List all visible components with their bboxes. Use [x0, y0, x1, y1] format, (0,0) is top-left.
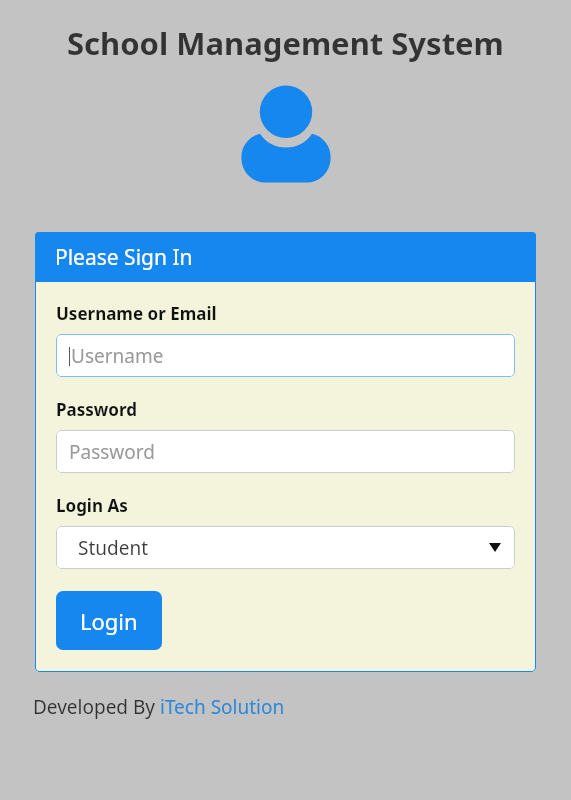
- staticText: Developed By iTech Solution: [33, 694, 285, 720]
- staticText: Password: [56, 398, 137, 421]
- other: User account: [238, 82, 334, 184]
- staticText: Login As: [56, 494, 128, 517]
- staticText: Student: [78, 535, 149, 561]
- other: Open role selector: [489, 543, 501, 552]
- staticText: Username: [71, 343, 164, 369]
- staticText: Username or Email: [56, 302, 217, 325]
- staticText: Password: [69, 439, 155, 465]
- staticText: School Management System: [67, 22, 504, 64]
- button[interactable]: Password: [56, 430, 515, 473]
- button[interactable]: Student: [56, 526, 515, 569]
- staticText: Please Sign In: [55, 243, 193, 272]
- button[interactable]: Login: [56, 591, 162, 650]
- button[interactable]: Please Sign In: [35, 232, 536, 282]
- staticText: Login: [80, 606, 138, 636]
- button[interactable]: Username: [56, 334, 515, 377]
- button[interactable]: Developed By iTech Solution: [33, 694, 285, 720]
